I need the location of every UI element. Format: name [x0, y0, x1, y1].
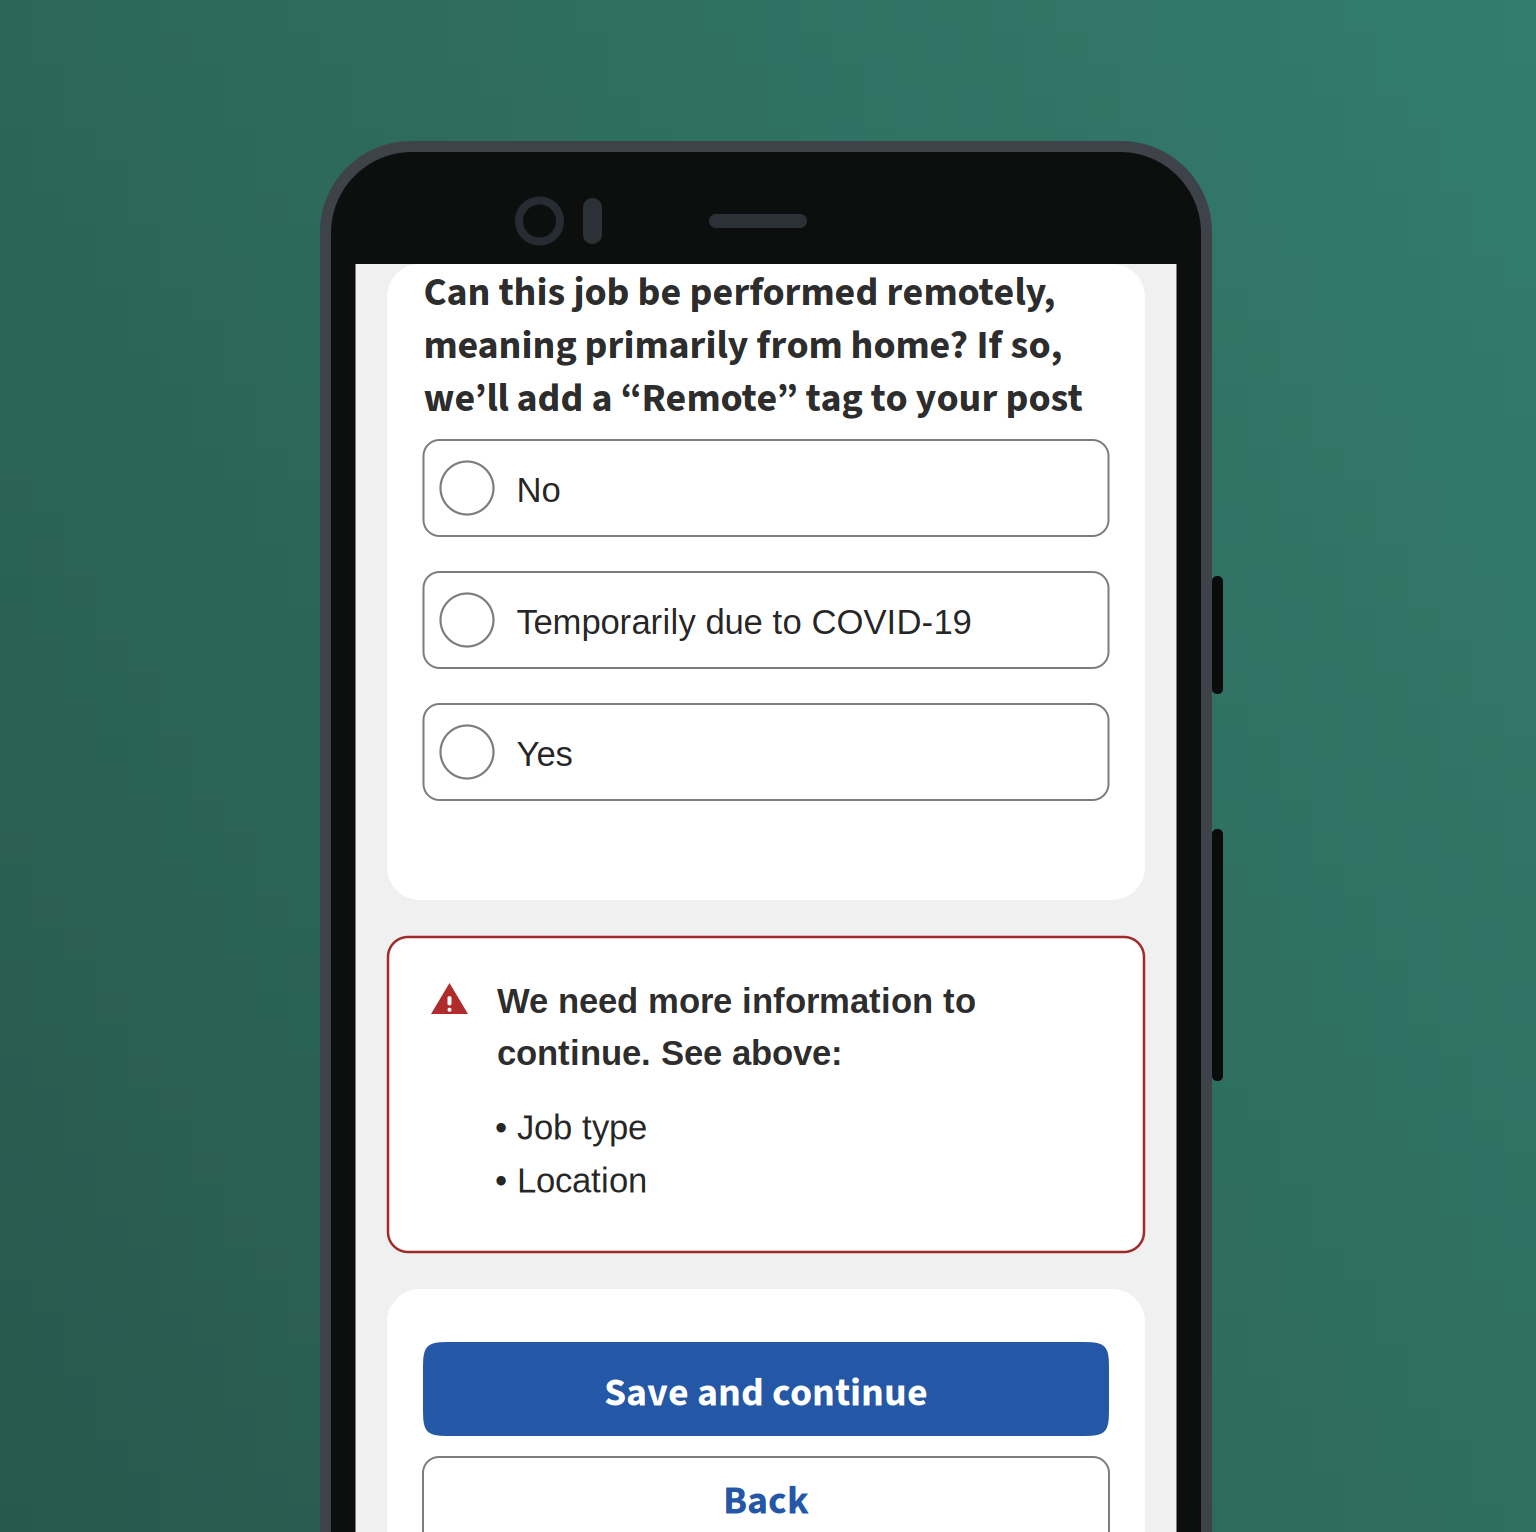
staticText: we’ll add a “Remote” tag to your post	[423, 370, 1082, 427]
staticText: Save and continue	[604, 1364, 928, 1421]
button[interactable]: Save and continue	[423, 1342, 1109, 1436]
staticText: continue. See above:	[497, 1034, 843, 1072]
staticText: Yes	[516, 735, 572, 773]
staticText: We need more information to	[497, 982, 976, 1020]
staticText: Back	[723, 1472, 809, 1529]
button[interactable]: Back	[423, 1457, 1109, 1532]
staticText: Can this job be performed remotely,	[423, 264, 1055, 321]
button[interactable]: Yes	[423, 704, 1108, 800]
button[interactable]: Temporarily due to COVID-19	[423, 572, 1108, 668]
staticText: Temporarily due to COVID-19	[516, 603, 971, 641]
staticText: • Location	[495, 1161, 647, 1200]
staticText: meaning primarily from home? If so,	[423, 317, 1062, 374]
staticText: No	[516, 471, 560, 509]
staticText: • Job type	[495, 1108, 647, 1147]
button[interactable]: No	[423, 440, 1108, 536]
